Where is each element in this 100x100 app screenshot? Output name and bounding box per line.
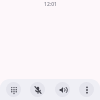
button[interactable]: Dialpad [6,82,21,97]
button[interactable]: Speaker [55,82,70,97]
button[interactable]: More options [79,82,94,97]
button[interactable]: Mute microphone [30,82,45,97]
staticText: 12:01 [44,1,57,8]
